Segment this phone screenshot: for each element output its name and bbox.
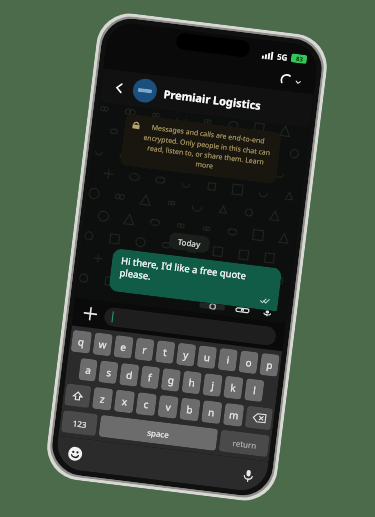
button[interactable]: Camera bbox=[234, 306, 250, 314]
staticText: 123 bbox=[72, 417, 87, 430]
staticText: Today bbox=[177, 236, 201, 249]
button[interactable]: l bbox=[244, 378, 264, 402]
button[interactable]: space bbox=[98, 415, 218, 451]
button[interactable]: z bbox=[92, 387, 113, 411]
staticText: b bbox=[186, 402, 194, 417]
button[interactable]: i bbox=[217, 348, 238, 372]
staticText: Premiair Logistics bbox=[163, 86, 262, 113]
button[interactable]: v bbox=[157, 395, 179, 419]
button[interactable]: m bbox=[223, 403, 244, 427]
button[interactable]: e bbox=[113, 335, 134, 359]
staticText: j bbox=[211, 378, 215, 392]
staticText: a bbox=[85, 362, 92, 377]
button[interactable]: Dictation bbox=[238, 465, 258, 485]
staticText: g bbox=[167, 373, 176, 387]
staticText: e bbox=[120, 340, 127, 354]
staticText: x bbox=[121, 394, 129, 409]
button[interactable]: k bbox=[223, 376, 244, 400]
staticText: k bbox=[230, 380, 237, 395]
button[interactable]: b bbox=[179, 397, 201, 422]
staticText: Messages and calls are end-to-end encryp… bbox=[139, 122, 273, 177]
staticText: l bbox=[252, 383, 257, 397]
staticText: 83 bbox=[295, 55, 303, 64]
button[interactable]: t bbox=[155, 340, 175, 364]
staticText: q bbox=[77, 334, 86, 349]
button[interactable]: s bbox=[98, 360, 119, 384]
button[interactable]: d bbox=[119, 363, 139, 387]
button[interactable]: h bbox=[181, 370, 202, 394]
button[interactable]: Key bbox=[219, 429, 270, 457]
staticText: d bbox=[125, 367, 134, 382]
staticText: t bbox=[162, 345, 168, 359]
button[interactable]: Key bbox=[245, 405, 273, 430]
button[interactable]: Emoji bbox=[65, 444, 85, 464]
staticText: o bbox=[245, 355, 253, 370]
staticText: i bbox=[226, 353, 231, 367]
staticText: space bbox=[147, 426, 170, 440]
button[interactable]: Call bbox=[279, 73, 302, 89]
button[interactable]: Voice message bbox=[258, 309, 275, 317]
button[interactable]: Key bbox=[61, 410, 98, 436]
button[interactable]: r bbox=[134, 337, 155, 361]
staticText: 5G bbox=[276, 50, 289, 63]
button[interactable]: n bbox=[201, 400, 222, 424]
staticText: r bbox=[142, 342, 148, 357]
button[interactable]: x bbox=[114, 389, 135, 414]
staticText: w bbox=[98, 337, 107, 352]
staticText: Hi there, I'd like a free quote please. bbox=[119, 254, 273, 297]
staticText: p bbox=[266, 357, 274, 372]
staticText: f bbox=[147, 370, 153, 385]
button[interactable]: c bbox=[135, 392, 157, 416]
button[interactable]: Attach bbox=[80, 304, 100, 324]
button[interactable]: j bbox=[202, 373, 223, 397]
staticText: m bbox=[228, 407, 240, 422]
button[interactable]: Key bbox=[64, 383, 91, 408]
staticText: s bbox=[105, 365, 112, 380]
staticText: y bbox=[182, 347, 190, 362]
staticText: v bbox=[165, 400, 172, 414]
button[interactable]: g bbox=[161, 368, 181, 392]
button[interactable]: Stickers bbox=[199, 302, 225, 311]
button[interactable]: u bbox=[197, 345, 217, 369]
button[interactable]: q bbox=[71, 330, 92, 354]
button[interactable]: f bbox=[140, 365, 160, 389]
button[interactable]: o bbox=[238, 350, 259, 374]
button[interactable]: y bbox=[176, 343, 196, 367]
staticText: h bbox=[188, 375, 197, 390]
button[interactable]: Premiair Logistics bbox=[132, 77, 303, 122]
button[interactable]: a bbox=[78, 358, 98, 382]
staticText: return bbox=[232, 437, 257, 451]
staticText: z bbox=[99, 391, 106, 406]
button[interactable]: Back bbox=[107, 75, 131, 100]
staticText: n bbox=[207, 405, 216, 419]
staticText: u bbox=[203, 350, 212, 365]
button[interactable]: w bbox=[92, 332, 113, 356]
button[interactable]: p bbox=[259, 353, 280, 377]
staticText: c bbox=[143, 397, 150, 411]
button[interactable] bbox=[103, 306, 277, 346]
button[interactable]: Hi there, I'd like a free quote please. bbox=[118, 254, 273, 304]
